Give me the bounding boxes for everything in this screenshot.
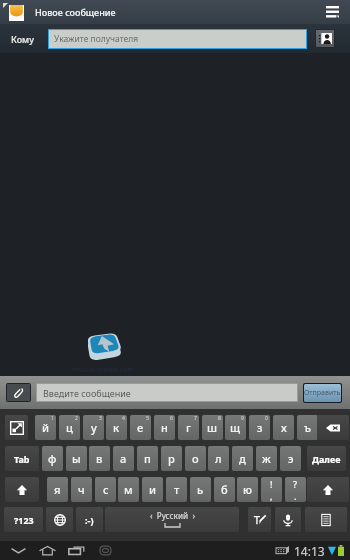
- staticText: ы: [72, 451, 81, 466]
- button[interactable]: э: [280, 446, 301, 471]
- staticText: ‹ Русский ›: [150, 510, 195, 521]
- button[interactable]: Navigate up: [0, 0, 350, 24]
- button[interactable]: Shift: [307, 477, 349, 502]
- button[interactable]: Backspace: [317, 415, 349, 440]
- button[interactable]: г: [178, 415, 199, 440]
- button[interactable]: х: [273, 415, 294, 440]
- button[interactable]: ф: [42, 446, 63, 471]
- staticText: Укажите получателя: [54, 33, 139, 45]
- button[interactable]: ъ: [297, 415, 318, 440]
- button[interactable]: т: [166, 477, 187, 502]
- staticText: й: [42, 420, 50, 435]
- button[interactable]: ю: [237, 477, 258, 502]
- button[interactable]: и: [142, 477, 163, 502]
- button[interactable]: Screenshot: [91, 541, 120, 560]
- staticText: у: [91, 420, 97, 435]
- staticText: 3: [99, 415, 102, 422]
- button[interactable]: Handwriting: [248, 507, 271, 532]
- staticText: Кому: [11, 33, 34, 45]
- button[interactable]: Space: [105, 507, 239, 532]
- button[interactable]: ?: [285, 477, 306, 502]
- button[interactable]: ж: [256, 446, 277, 471]
- button[interactable]: Tab: [5, 446, 39, 471]
- button[interactable]: в: [89, 446, 110, 471]
- button[interactable]: !: [261, 477, 282, 502]
- button[interactable]: Pick contact: [316, 30, 334, 47]
- staticText: 14:13: [294, 543, 325, 559]
- staticText: ж: [262, 451, 271, 466]
- staticText: 4: [122, 415, 125, 422]
- button[interactable]: Voice input: [275, 507, 301, 532]
- button[interactable]: а: [113, 446, 134, 471]
- staticText: ф: [48, 451, 57, 466]
- button[interactable]: Home: [33, 541, 62, 560]
- button[interactable]: з: [249, 415, 270, 440]
- button[interactable]: Укажите получателя: [49, 30, 306, 48]
- button[interactable]: Attach: [7, 384, 30, 401]
- staticText: к: [113, 420, 120, 435]
- button[interactable]: Далее: [307, 446, 346, 471]
- staticText: д: [239, 451, 246, 466]
- button[interactable]: у: [83, 415, 104, 440]
- button[interactable]: к: [106, 415, 127, 440]
- button[interactable]: щ: [225, 415, 246, 440]
- staticText: ь: [197, 482, 204, 497]
- button[interactable]: Shift: [5, 477, 39, 502]
- button[interactable]: Recent apps: [62, 541, 91, 560]
- button[interactable]: д: [232, 446, 253, 471]
- button[interactable]: е: [130, 415, 151, 440]
- staticText: п: [144, 451, 151, 466]
- button[interactable]: я: [47, 477, 68, 502]
- staticText: о: [192, 451, 199, 466]
- staticText: Отправить: [304, 388, 341, 398]
- staticText: 6: [170, 415, 173, 422]
- button[interactable]: р: [161, 446, 182, 471]
- button[interactable]: :-): [76, 507, 103, 532]
- staticText: 8: [218, 415, 221, 422]
- button[interactable]: Clipboard: [305, 507, 347, 532]
- button[interactable]: Введите сообщение: [37, 384, 297, 401]
- staticText: и: [149, 482, 157, 497]
- button[interactable]: Hide keyboard: [4, 541, 33, 560]
- staticText: з: [257, 420, 263, 435]
- staticText: щ: [230, 420, 241, 435]
- button[interactable]: с: [95, 477, 116, 502]
- staticText: е: [137, 420, 144, 435]
- staticText: ?: [293, 478, 298, 490]
- button[interactable]: ?123: [4, 507, 43, 532]
- staticText: 9: [241, 415, 244, 422]
- staticText: ,: [270, 490, 273, 502]
- button[interactable]: ь: [190, 477, 211, 502]
- staticText: Новое сообщение: [35, 6, 116, 18]
- staticText: б: [221, 482, 228, 497]
- button[interactable]: м: [118, 477, 139, 502]
- staticText: ц: [66, 420, 73, 435]
- staticText: с: [103, 482, 109, 497]
- staticText: а: [120, 451, 127, 466]
- staticText: 0: [265, 415, 268, 422]
- staticText: 7: [194, 415, 197, 422]
- staticText: т: [174, 482, 180, 497]
- staticText: Далее: [312, 453, 341, 465]
- staticText: 5: [146, 415, 149, 422]
- button[interactable]: ы: [66, 446, 87, 471]
- staticText: :-): [85, 514, 94, 526]
- button[interactable]: Resize keyboard: [5, 415, 28, 440]
- button[interactable]: ч: [71, 477, 92, 502]
- button[interactable]: п: [137, 446, 158, 471]
- button[interactable]: ц: [59, 415, 80, 440]
- button[interactable]: Change language: [46, 507, 73, 532]
- staticText: х: [281, 420, 287, 435]
- button[interactable]: Отправить: [304, 384, 341, 402]
- staticText: Tab: [14, 453, 30, 465]
- staticText: ю: [243, 482, 252, 497]
- button[interactable]: н: [154, 415, 175, 440]
- staticText: .: [294, 490, 297, 502]
- button[interactable]: More options: [318, 0, 346, 24]
- button[interactable]: л: [208, 446, 229, 471]
- staticText: м: [124, 482, 133, 497]
- button[interactable]: й: [35, 415, 56, 440]
- button[interactable]: б: [214, 477, 235, 502]
- button[interactable]: о: [185, 446, 206, 471]
- button[interactable]: ш: [202, 415, 223, 440]
